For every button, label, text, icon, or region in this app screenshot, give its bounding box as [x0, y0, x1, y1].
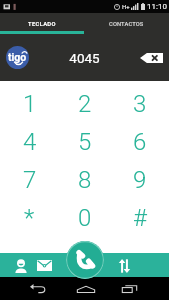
button[interactable]: 3 [112, 84, 167, 123]
staticText: 6 [133, 128, 147, 156]
staticText: 0 [78, 204, 92, 232]
staticText: 2 [78, 90, 92, 118]
button[interactable]: CONTACTOS [84, 13, 169, 31]
staticText: 5 [78, 128, 92, 156]
button[interactable]: 7 [2, 161, 57, 199]
button[interactable]: # [112, 199, 167, 237]
button[interactable]: * [2, 199, 57, 237]
staticText: tigo [8, 51, 27, 63]
button[interactable]: 6 [112, 123, 167, 161]
button[interactable]: Backspace [140, 53, 163, 63]
button[interactable]: 2 [57, 84, 112, 123]
button[interactable]: Recent apps [113, 278, 146, 300]
staticText: 7 [23, 166, 37, 194]
button[interactable]: 4 [2, 123, 57, 161]
other: Tigo [6, 46, 29, 69]
button[interactable]: Call [66, 241, 104, 279]
staticText: TECLADO [28, 21, 56, 28]
button[interactable]: 0 [57, 199, 112, 237]
staticText: 4045 [69, 50, 100, 66]
staticText: * [24, 204, 35, 232]
staticText: 8 [78, 166, 92, 194]
staticText: 9 [133, 166, 147, 194]
button[interactable]: TECLADO [0, 13, 84, 31]
button[interactable]: Data transfer [114, 255, 135, 276]
staticText: H+ [122, 3, 130, 10]
button[interactable]: 5 [57, 123, 112, 161]
staticText: 3 [133, 90, 147, 118]
button[interactable]: Home [69, 278, 102, 300]
staticText: CONTACTOS [109, 21, 144, 28]
button[interactable]: 9 [112, 161, 167, 199]
staticText: 11:10 [147, 2, 167, 11]
button[interactable]: Messages [34, 255, 55, 276]
button[interactable]: Back [21, 278, 54, 300]
button[interactable]: 8 [57, 161, 112, 199]
staticText: 1 [23, 90, 37, 118]
staticText: # [133, 204, 147, 232]
staticText: 4 [23, 128, 37, 156]
button[interactable]: Contacts [10, 255, 31, 276]
button[interactable]: 1 [2, 84, 57, 123]
